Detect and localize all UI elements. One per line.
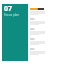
staticText: Focus plan [4,13,20,17]
button[interactable]: 07 [2,4,28,61]
staticText: 07 [4,4,13,14]
